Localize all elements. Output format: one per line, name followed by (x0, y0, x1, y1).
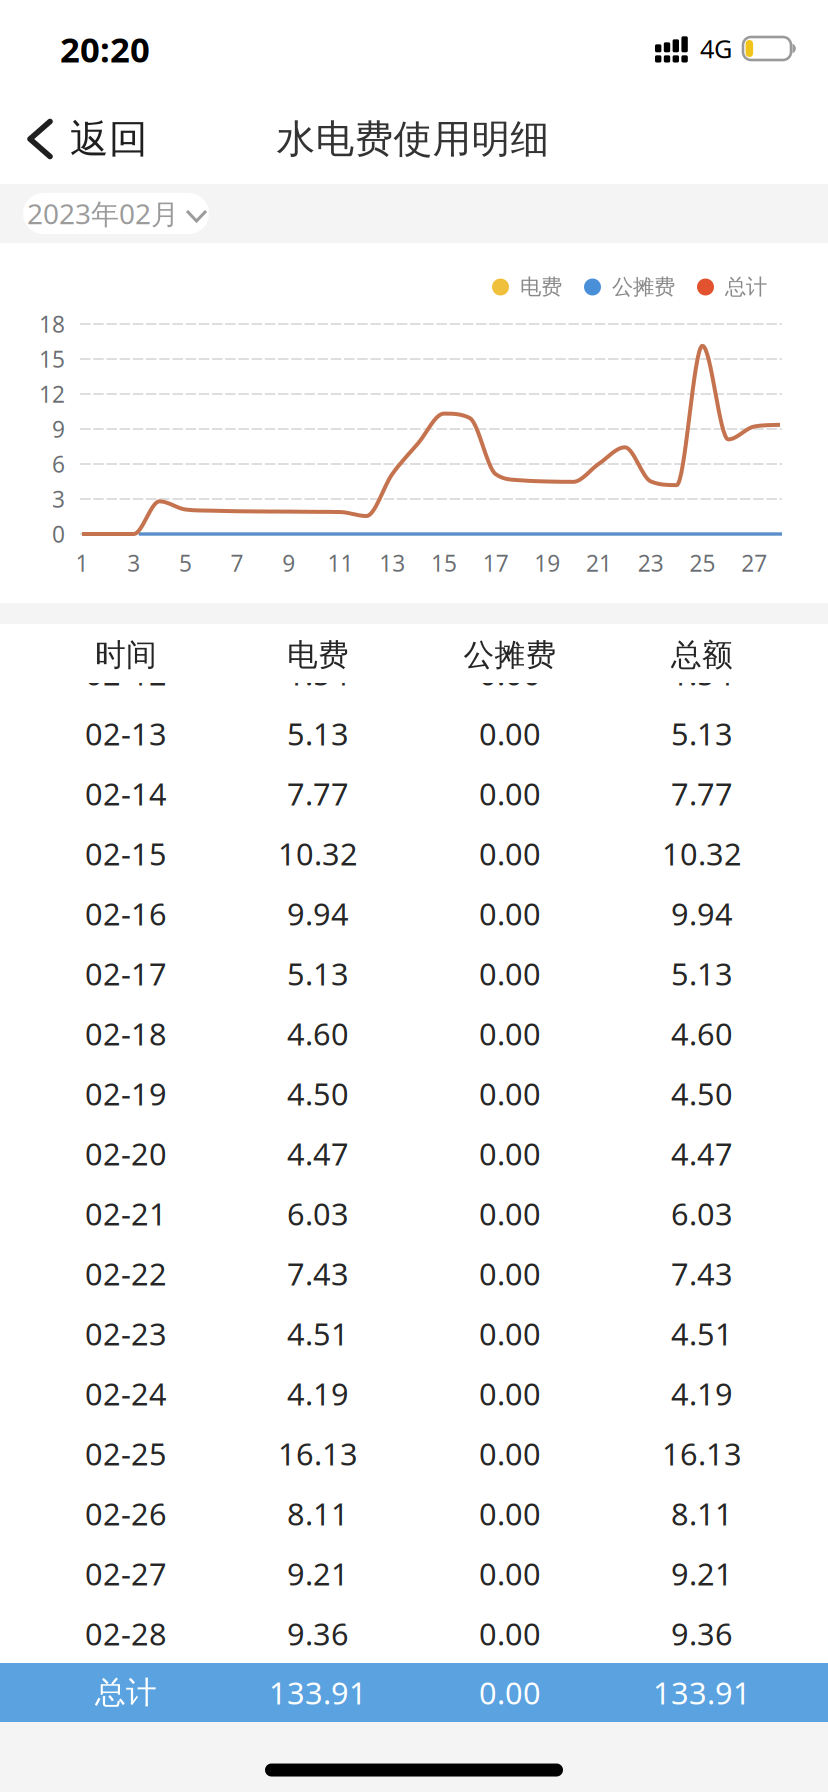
staticText: 0.00 (479, 1253, 541, 1294)
staticText: 0.00 (479, 1133, 541, 1174)
staticText: 7.77 (287, 773, 349, 814)
staticText: 4.51 (287, 1313, 349, 1354)
staticText: 02-16 (85, 893, 167, 934)
staticText: 9.21 (287, 1553, 349, 1594)
staticText: 0.00 (479, 713, 541, 754)
staticText: 11 (327, 548, 353, 578)
staticText: 12 (39, 379, 65, 409)
staticText: 0.00 (479, 1493, 541, 1534)
staticText: 9 (52, 414, 65, 444)
staticText: 02-12 (85, 653, 167, 694)
staticText: 23 (638, 548, 664, 578)
staticText: 02-17 (85, 953, 167, 994)
staticText: 10.32 (278, 833, 358, 874)
staticText: 133.91 (653, 1672, 751, 1713)
staticText: 5.13 (671, 713, 733, 754)
staticText: 0.00 (479, 1672, 541, 1713)
staticText: 0.00 (479, 893, 541, 934)
staticText: 0.00 (479, 1433, 541, 1474)
staticText: 25 (689, 548, 715, 578)
staticText: 返回 (70, 115, 148, 163)
staticText: 02-14 (85, 773, 167, 814)
staticText: 0.00 (479, 1313, 541, 1354)
staticText: 2023年02月 (27, 195, 179, 232)
staticText: 02-26 (85, 1493, 167, 1534)
staticText: 27 (741, 548, 767, 578)
button[interactable]: 2023年02月 (23, 193, 209, 234)
staticText: 电费 (520, 274, 562, 300)
staticText: 0.00 (479, 1013, 541, 1054)
staticText: 3 (52, 484, 65, 514)
staticText: 公摊费 (612, 274, 675, 300)
staticText: 4.50 (287, 1073, 349, 1114)
staticText: 02-18 (85, 1013, 167, 1054)
staticText: 3 (127, 548, 140, 578)
staticText: 17 (483, 548, 509, 578)
staticText: 公摊费 (463, 636, 556, 674)
staticText: 15 (431, 548, 457, 578)
staticText: 总计 (95, 1674, 157, 1711)
staticText: 02-20 (85, 1133, 167, 1174)
staticText: 4.47 (287, 1133, 349, 1174)
staticText: 9 (282, 548, 295, 578)
staticText: 15 (39, 344, 65, 374)
staticText: 5.13 (287, 953, 349, 994)
staticText: 0.00 (479, 833, 541, 874)
staticText: 16.13 (278, 1433, 358, 1474)
staticText: 4.19 (671, 1373, 733, 1414)
staticText: 02-25 (85, 1433, 167, 1474)
staticText: 02-19 (85, 1073, 167, 1114)
staticText: 02-24 (85, 1373, 167, 1414)
staticText: 19 (534, 548, 560, 578)
staticText: 10.32 (662, 833, 742, 874)
staticText: 9.94 (671, 893, 733, 934)
staticText: 02-21 (85, 1193, 167, 1234)
staticText: 0.00 (479, 953, 541, 994)
staticText: 5.13 (287, 713, 349, 754)
staticText: 6 (52, 449, 65, 479)
staticText: 1.54 (671, 653, 733, 694)
staticText: 8.11 (287, 1493, 349, 1534)
staticText: 1.54 (287, 653, 349, 694)
staticText: 7 (231, 548, 244, 578)
staticText: 总计 (725, 274, 767, 300)
staticText: 6.03 (287, 1193, 349, 1234)
staticText: 0 (52, 519, 65, 549)
staticText: 02-15 (85, 833, 167, 874)
staticText: 9.36 (287, 1613, 349, 1654)
staticText: 电费 (287, 636, 349, 674)
staticText: 时间 (95, 636, 157, 674)
staticText: 9.94 (287, 893, 349, 934)
staticText: 133.91 (269, 1672, 367, 1713)
staticText: 9.21 (671, 1553, 733, 1594)
staticText: 0.00 (479, 773, 541, 814)
staticText: 16.13 (662, 1433, 742, 1474)
staticText: 7.43 (287, 1253, 349, 1294)
staticText: 5.13 (671, 953, 733, 994)
staticText: 13 (379, 548, 405, 578)
staticText: 0.00 (479, 1373, 541, 1414)
staticText: 水电费使用明细 (276, 115, 549, 163)
staticText: 02-27 (85, 1553, 167, 1594)
staticText: 7.43 (671, 1253, 733, 1294)
staticText: 4.50 (671, 1073, 733, 1114)
staticText: 5 (179, 548, 192, 578)
staticText: 0.00 (479, 1193, 541, 1234)
staticText: 20:20 (60, 26, 150, 72)
staticText: 总额 (671, 636, 733, 674)
staticText: 0.00 (479, 653, 541, 694)
staticText: 1 (75, 548, 88, 578)
staticText: 9.36 (671, 1613, 733, 1654)
staticText: 6.03 (671, 1193, 733, 1234)
staticText: 4.60 (671, 1013, 733, 1054)
staticText: 4.19 (287, 1373, 349, 1414)
staticText: 18 (39, 309, 65, 339)
staticText: 0.00 (479, 1553, 541, 1594)
button[interactable]: 返回 (0, 99, 168, 179)
staticText: 02-23 (85, 1313, 167, 1354)
staticText: 4G (700, 32, 732, 65)
staticText: 02-22 (85, 1253, 167, 1294)
staticText: 0.00 (479, 1073, 541, 1114)
staticText: 21 (586, 548, 612, 578)
staticText: 02-13 (85, 713, 167, 754)
